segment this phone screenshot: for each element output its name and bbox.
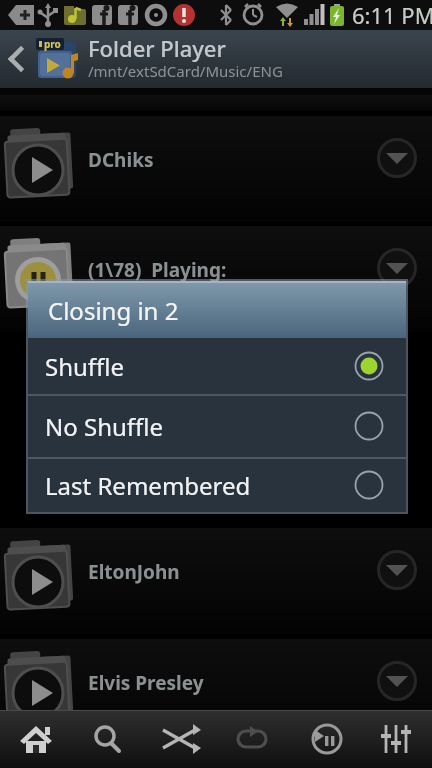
staticText: No Shuffle xyxy=(45,410,164,443)
staticText: 6:11 PM xyxy=(352,0,432,30)
button[interactable] xyxy=(0,528,432,634)
staticText: pro xyxy=(44,37,61,51)
button[interactable] xyxy=(0,116,432,222)
button[interactable] xyxy=(0,639,432,745)
button[interactable] xyxy=(0,30,432,88)
button[interactable] xyxy=(0,710,72,768)
staticText: DChiks xyxy=(88,147,154,173)
button[interactable] xyxy=(360,710,432,768)
staticText: Folder Player xyxy=(88,33,226,63)
button[interactable] xyxy=(288,710,360,768)
staticText: Closing in 2 xyxy=(48,294,179,327)
button[interactable] xyxy=(377,550,417,590)
staticText: Shuffle xyxy=(45,350,125,383)
staticText: (1\78) Playing: xyxy=(88,257,227,283)
staticText: Elvis Presley xyxy=(88,670,204,696)
button[interactable] xyxy=(28,338,406,394)
button[interactable] xyxy=(72,710,144,768)
staticText: Last Remembered xyxy=(45,469,251,502)
staticText: EltonJohn xyxy=(88,559,180,585)
button[interactable] xyxy=(216,710,288,768)
button[interactable] xyxy=(377,138,417,178)
button[interactable] xyxy=(377,248,417,288)
button[interactable] xyxy=(0,226,432,332)
button[interactable] xyxy=(28,459,406,512)
button[interactable] xyxy=(28,396,406,457)
staticText: /mnt/extSdCard/Music/ENG xyxy=(88,61,283,81)
button[interactable] xyxy=(144,710,216,768)
button[interactable] xyxy=(377,661,417,701)
